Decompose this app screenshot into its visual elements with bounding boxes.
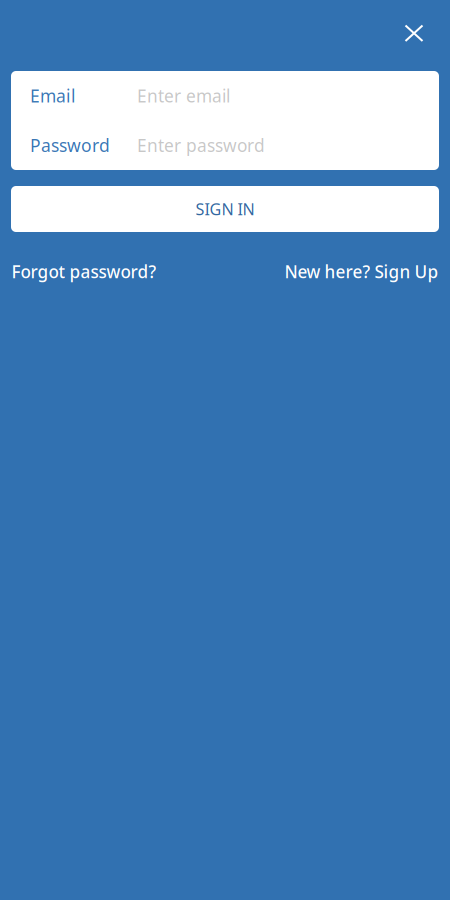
staticText: New here? Sign Up	[284, 260, 438, 283]
staticText: Forgot password?	[11, 260, 156, 283]
staticText: SIGN IN	[195, 198, 254, 220]
staticText: Password	[30, 133, 110, 157]
staticText: Email	[30, 84, 76, 108]
button[interactable]: Forgot password?	[11, 260, 156, 283]
button[interactable]: Email	[11, 71, 439, 120]
button[interactable]: New here? Sign Up	[284, 260, 438, 283]
staticText: Enter password	[137, 133, 265, 157]
button[interactable]: Password	[11, 120, 439, 170]
staticText: Enter email	[137, 84, 230, 107]
button[interactable]: Close	[397, 16, 431, 50]
button[interactable]: SIGN IN	[11, 186, 439, 232]
